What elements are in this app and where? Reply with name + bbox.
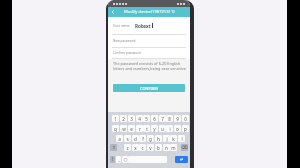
- staticText: 4: [138, 116, 141, 122]
- button[interactable]: f: [139, 135, 146, 142]
- button[interactable]: b: [155, 144, 162, 151]
- button[interactable]: w: [120, 125, 127, 132]
- button[interactable]: x: [132, 144, 139, 151]
- button[interactable]: g: [147, 135, 154, 142]
- staticText: g: [149, 136, 152, 142]
- staticText: User name:: [113, 24, 131, 28]
- button[interactable]: q: [112, 125, 119, 132]
- button[interactable]: t: [143, 125, 150, 132]
- staticText: 6: [153, 116, 156, 122]
- staticText: 3: [130, 116, 133, 122]
- staticText: ↵: [180, 157, 184, 162]
- staticText: The password consists of 6-20 English le…: [113, 61, 186, 71]
- button[interactable]: 2: [120, 115, 127, 122]
- button[interactable]: 9: [174, 115, 181, 122]
- button[interactable]: !#1: [110, 156, 115, 163]
- button[interactable]: User name:: [108, 17, 190, 35]
- button[interactable]: ,: [116, 156, 121, 163]
- button[interactable]: 5: [143, 115, 150, 122]
- staticText: x: [134, 145, 137, 151]
- staticText: i: [169, 126, 171, 132]
- button[interactable]: o: [174, 125, 181, 132]
- staticText: Robsxt: [135, 23, 151, 29]
- button[interactable]: r: [136, 125, 143, 132]
- staticText: n: [165, 145, 168, 151]
- button[interactable]: 7: [159, 115, 166, 122]
- staticText: !#1: [110, 156, 115, 163]
- button[interactable]: p: [182, 125, 189, 132]
- staticText: b: [157, 145, 160, 151]
- button[interactable]: 1: [112, 115, 119, 122]
- staticText: Confirm password:: [113, 51, 142, 55]
- button[interactable]: m: [170, 144, 177, 151]
- button[interactable]: l: [178, 135, 185, 142]
- staticText: l: [181, 136, 183, 142]
- button[interactable]: d: [132, 135, 139, 142]
- button[interactable]: 0: [182, 115, 189, 122]
- button[interactable]: k: [170, 135, 177, 142]
- button[interactable]: u: [159, 125, 166, 132]
- button[interactable]: c: [139, 144, 146, 151]
- staticText: e: [130, 126, 133, 132]
- staticText: t: [146, 126, 148, 132]
- staticText: 1: [114, 116, 117, 122]
- staticText: 0: [184, 116, 187, 122]
- button[interactable]: z: [124, 144, 131, 151]
- staticText: z: [126, 145, 129, 151]
- button[interactable]: Modify device(198721311): [108, 7, 190, 17]
- button[interactable]: Back: [110, 9, 116, 15]
- button[interactable]: n: [163, 144, 170, 151]
- staticText: 7: [161, 116, 164, 122]
- staticText: 9: [176, 116, 179, 122]
- staticText: 5: [145, 116, 148, 122]
- staticText: m: [171, 145, 176, 151]
- button[interactable]: ⇧: [110, 144, 117, 151]
- staticText: c: [141, 145, 144, 151]
- button[interactable]: 8: [166, 115, 173, 122]
- button[interactable]: Confirm password:: [108, 48, 190, 59]
- button[interactable]: v: [147, 144, 154, 151]
- staticText: w: [122, 126, 126, 132]
- button[interactable]: y: [151, 125, 158, 132]
- button[interactable]: e: [128, 125, 135, 132]
- staticText: v: [149, 145, 152, 151]
- button[interactable]: ⌫: [181, 144, 188, 151]
- button[interactable]: CONFIRM: [113, 84, 185, 92]
- staticText: a: [118, 136, 121, 142]
- staticText: CONFIRM: [140, 86, 158, 91]
- button[interactable]: s: [124, 135, 131, 142]
- staticText: ⇧: [112, 145, 116, 150]
- staticText: d: [134, 136, 137, 142]
- staticText: ○: [123, 157, 128, 162]
- button[interactable]: 6: [151, 115, 158, 122]
- staticText: y: [153, 126, 156, 132]
- button[interactable]: 3: [128, 115, 135, 122]
- staticText: ,: [118, 157, 120, 163]
- button[interactable]: j: [163, 135, 170, 142]
- staticText: p: [184, 126, 187, 132]
- staticText: s: [126, 136, 129, 142]
- staticText: k: [172, 136, 175, 142]
- staticText: New password:: [113, 39, 136, 43]
- button[interactable]: i: [166, 125, 173, 132]
- staticText: q: [114, 126, 117, 132]
- staticText: u: [161, 126, 164, 132]
- staticText: Modify device(198721311): [124, 9, 175, 15]
- button[interactable]: h: [155, 135, 162, 142]
- staticText: 2: [122, 116, 125, 122]
- staticText: h: [157, 136, 160, 142]
- button[interactable]: ○: [122, 156, 128, 163]
- staticText: f: [142, 136, 144, 142]
- staticText: ⌫: [181, 145, 188, 150]
- button[interactable]: New password:: [108, 35, 190, 48]
- button[interactable]: a: [116, 135, 123, 142]
- button[interactable]: ↵: [175, 156, 188, 163]
- staticText: o: [176, 126, 179, 132]
- staticText: r: [139, 126, 141, 132]
- staticText: j: [166, 136, 168, 142]
- button[interactable]: 4: [136, 115, 143, 122]
- staticText: 8: [168, 116, 171, 122]
